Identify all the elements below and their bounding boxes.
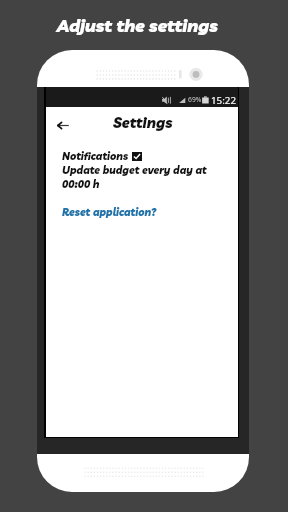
staticText: Settings: [113, 114, 173, 132]
staticText: 15:22: [211, 94, 237, 107]
staticText: 00:00 h: [62, 178, 100, 191]
staticText: Reset application?: [62, 206, 157, 219]
staticText: Notifications: [62, 150, 129, 163]
button[interactable]: Notifications: [62, 150, 142, 163]
staticText: Adjust the settings: [57, 15, 218, 36]
button[interactable]: [62, 205, 158, 219]
button[interactable]: [62, 163, 212, 190]
staticText: Update budget every day at: [62, 164, 207, 177]
staticText: 69%: [188, 95, 202, 104]
button[interactable]: Back: [53, 117, 74, 134]
